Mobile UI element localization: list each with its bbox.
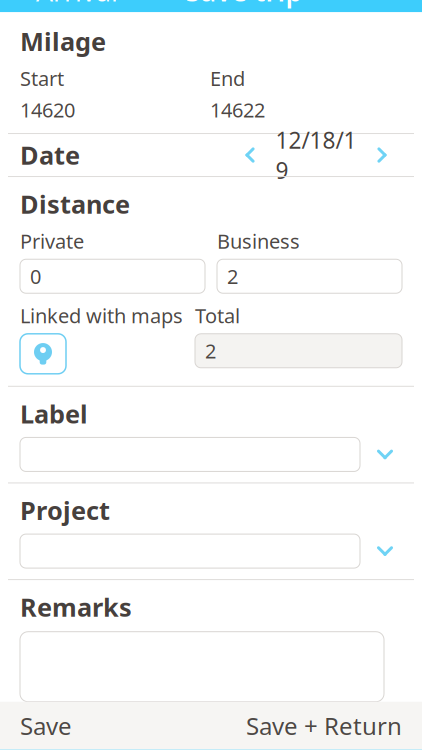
staticText: 2 [205, 337, 216, 364]
button[interactable]: Previous day [230, 138, 270, 172]
staticText: 14620 [20, 96, 75, 123]
button[interactable]: Next day [362, 138, 402, 172]
staticText: Save [20, 710, 72, 742]
button[interactable]: Choose Label [368, 437, 402, 471]
staticText: Business [217, 228, 300, 254]
staticText: Distance [20, 187, 130, 221]
button[interactable]: Trips [0, 747, 211, 750]
staticText: Private [20, 228, 84, 254]
staticText: Total [195, 302, 240, 329]
button[interactable]: Choose Project [368, 534, 402, 568]
staticText: Save + Return [246, 710, 402, 742]
staticText: End [210, 65, 245, 91]
button[interactable]: Arrival [0, 0, 118, 15]
staticText: Date [20, 138, 80, 172]
staticText: Label [20, 397, 88, 430]
staticText: Save trip [185, 0, 302, 9]
staticText: 12/18/19 [275, 125, 356, 185]
staticText: 2 [227, 263, 238, 290]
button[interactable]: More [211, 748, 422, 750]
staticText: Milage [20, 24, 106, 58]
staticText: Project [20, 493, 110, 527]
staticText: Start [20, 65, 64, 91]
staticText: 14622 [210, 96, 265, 123]
staticText: Linked with maps [20, 302, 183, 329]
button[interactable]: Save [0, 698, 92, 750]
staticText: Remarks [20, 590, 132, 624]
button[interactable]: Save + Return [226, 698, 422, 750]
staticText: 0 [30, 263, 41, 290]
staticText: Arrival [36, 0, 118, 9]
button[interactable]: Link with maps [20, 334, 66, 374]
